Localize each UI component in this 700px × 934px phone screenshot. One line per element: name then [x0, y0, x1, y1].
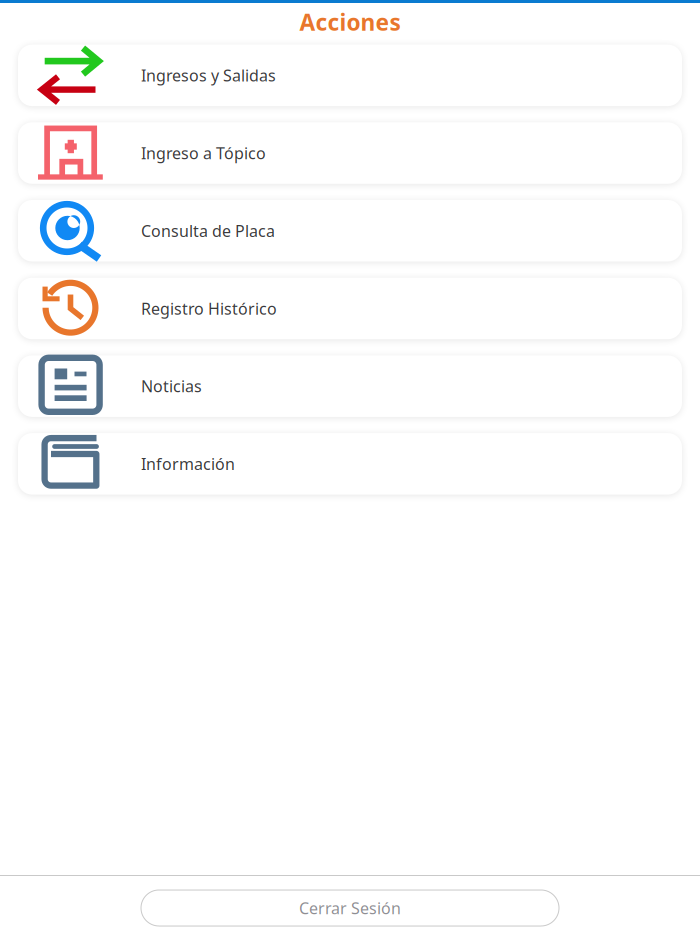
staticText: Registro Histórico — [141, 298, 277, 319]
staticText: Acciones — [299, 7, 400, 37]
staticText: Noticias — [141, 375, 202, 397]
button[interactable]: Ingresos y Salidas — [18, 45, 682, 106]
button[interactable]: Información — [18, 433, 682, 495]
button[interactable]: Registro Histórico — [18, 278, 682, 339]
staticText: Consulta de Placa — [141, 220, 275, 241]
button[interactable]: Noticias — [18, 355, 682, 417]
staticText: Cerrar Sesión — [299, 897, 401, 919]
button[interactable]: Consulta de Placa — [18, 200, 682, 261]
button[interactable]: Cerrar Sesión — [141, 890, 559, 926]
button[interactable]: Ingreso a Tópico — [18, 122, 682, 184]
staticText: Ingresos y Salidas — [141, 65, 276, 86]
staticText: Ingreso a Tópico — [141, 142, 266, 164]
staticText: Información — [141, 453, 235, 474]
